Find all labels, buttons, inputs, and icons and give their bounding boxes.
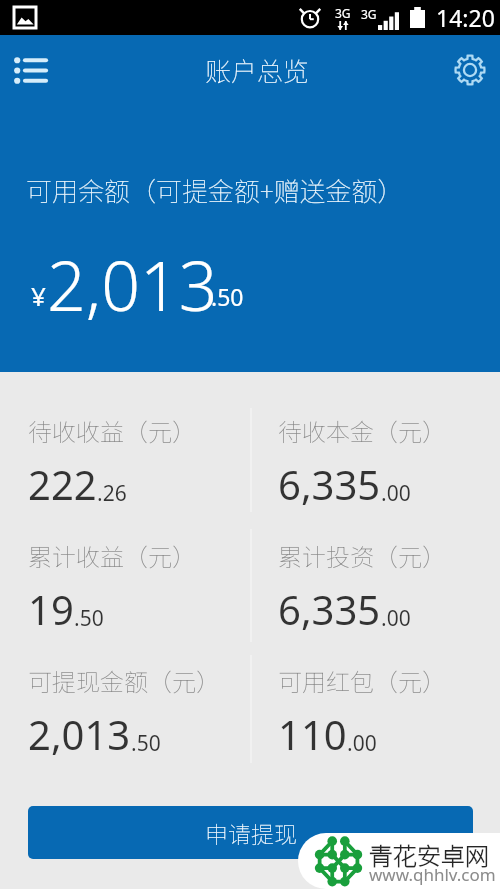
button[interactable]: 可用红包（元） <box>250 622 500 747</box>
staticText: 3G <box>361 6 377 22</box>
staticText: 可提现金额（元） <box>28 663 220 698</box>
button[interactable]: 待收本金（元） <box>250 372 500 497</box>
staticText: ¥ <box>31 278 46 313</box>
staticText: 6,335 <box>278 457 381 511</box>
button[interactable]: 待收收益（元） <box>0 372 250 497</box>
staticText: 可用红包（元） <box>278 663 446 698</box>
staticText: 申请提现 <box>205 816 297 849</box>
staticText: 待收收益（元） <box>28 413 196 448</box>
staticText: .26 <box>97 479 127 508</box>
staticText: 2,013 <box>28 707 131 761</box>
button[interactable]: Menu <box>0 40 60 100</box>
staticText: .00 <box>347 729 377 758</box>
staticText: 222 <box>28 457 97 511</box>
staticText: .50 <box>131 729 161 758</box>
staticText: 累计收益（元） <box>28 538 196 573</box>
staticText: www.qhhlv.com <box>369 863 496 886</box>
staticText: .50 <box>211 281 244 312</box>
staticText: 14:20 <box>436 2 495 33</box>
button[interactable]: 申请提现 <box>28 806 473 859</box>
staticText: 账户总览 <box>205 51 310 89</box>
button[interactable]: 累计收益（元） <box>0 497 250 622</box>
staticText: 110 <box>278 707 347 761</box>
button[interactable]: 可提现金额（元） <box>0 622 250 747</box>
staticText: 待收本金（元） <box>278 413 446 448</box>
staticText: 6,335 <box>278 582 381 636</box>
staticText: 累计投资（元） <box>278 538 446 573</box>
staticText: 2,013 <box>47 238 218 331</box>
staticText: 3G <box>335 5 351 21</box>
staticText: 19 <box>28 582 74 636</box>
staticText: 可用余额（可提金额+赠送金额） <box>26 171 404 209</box>
staticText: .50 <box>74 604 104 633</box>
staticText: .00 <box>381 604 411 633</box>
button[interactable]: Settings <box>440 40 500 100</box>
staticText: 青花安卓网 <box>369 837 489 872</box>
staticText: .00 <box>381 479 411 508</box>
button[interactable]: 累计投资（元） <box>250 497 500 622</box>
